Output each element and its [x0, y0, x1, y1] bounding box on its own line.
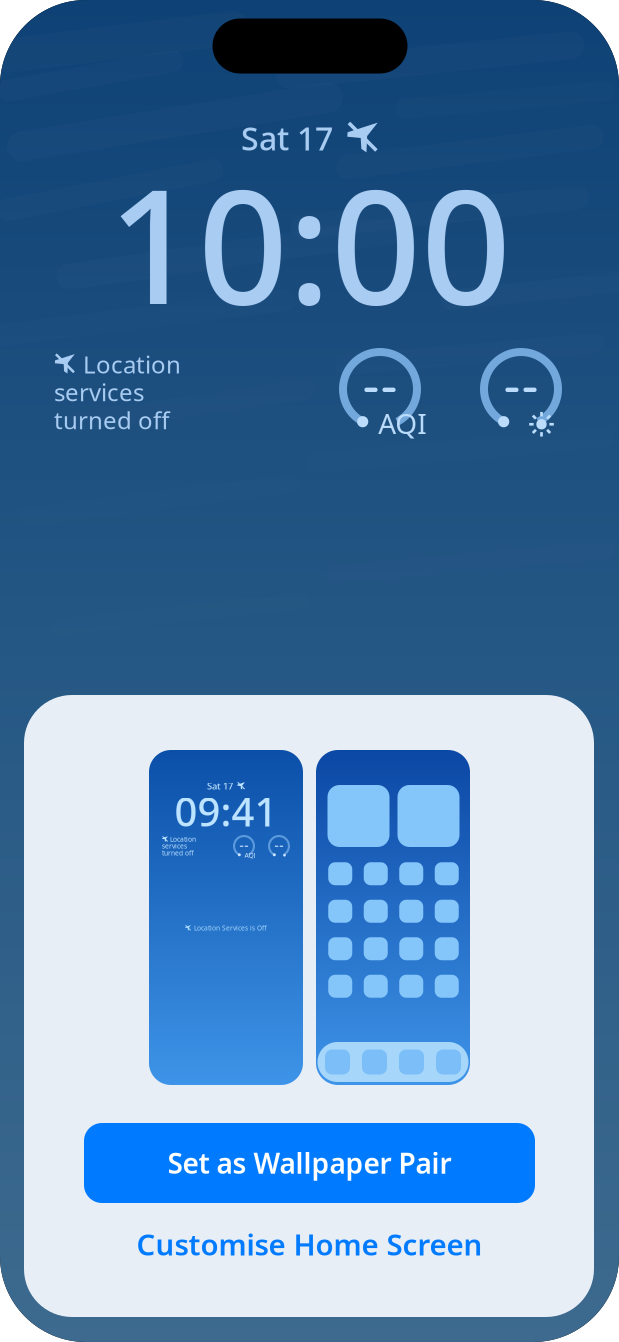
- staticText: 09:41: [174, 784, 277, 837]
- button[interactable]: Customise Home Screen: [49, 1214, 569, 1274]
- staticText: Customise Home Screen: [136, 1224, 482, 1263]
- staticText: Sat 17: [241, 117, 333, 159]
- staticText: Location Services is Off: [194, 924, 267, 932]
- staticText: services: [54, 376, 144, 408]
- staticText: AQI: [244, 851, 255, 860]
- staticText: 10:00: [108, 138, 511, 347]
- staticText: AQI: [378, 404, 426, 442]
- staticText: turned off: [54, 404, 170, 436]
- staticText: Location: [170, 835, 196, 844]
- staticText: services: [162, 842, 187, 850]
- staticText: turned off: [162, 848, 194, 857]
- staticText: Sat 17: [207, 780, 233, 792]
- button[interactable]: Set as Wallpaper Pair: [84, 1123, 535, 1203]
- staticText: Location: [83, 348, 181, 380]
- staticText: Set as Wallpaper Pair: [167, 1144, 451, 1182]
